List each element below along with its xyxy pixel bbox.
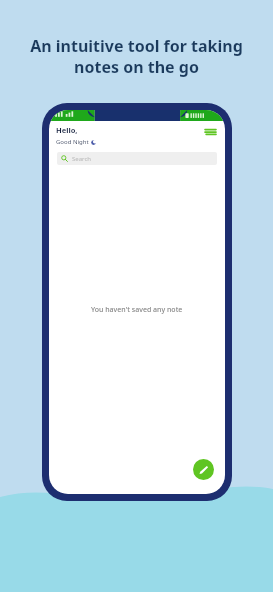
staticText: An intuitive tool for taking notes on th… <box>10 35 263 78</box>
button[interactable]: Create new note <box>193 459 214 480</box>
staticText: Good Night <box>56 138 89 146</box>
staticText: You haven't saved any note <box>91 305 183 315</box>
button[interactable]: Open navigation menu <box>202 125 218 139</box>
staticText: Hello, <box>56 125 78 135</box>
button[interactable]: Search <box>57 152 217 165</box>
staticText: Search <box>72 155 91 163</box>
